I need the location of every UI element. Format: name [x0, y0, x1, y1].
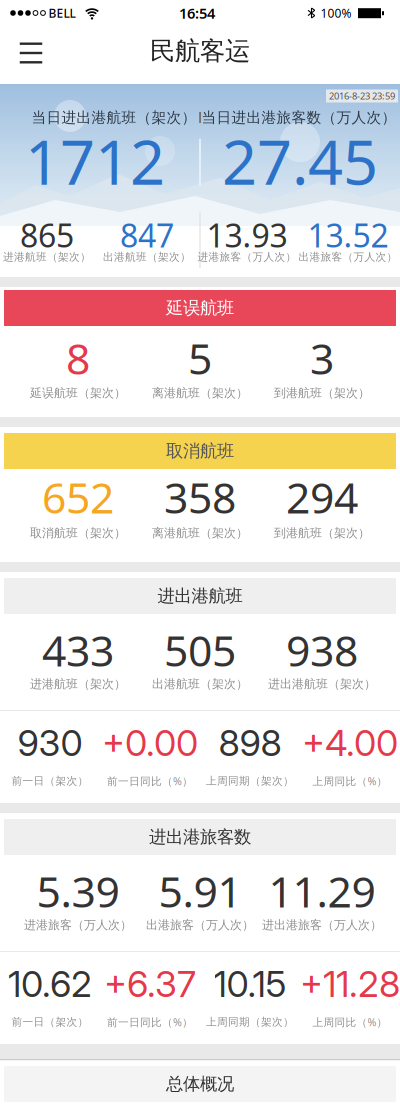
staticText: 出港旅客（万人次）: [146, 918, 254, 932]
staticText: 847: [120, 214, 174, 256]
staticText: 延误航班（架次）: [30, 386, 126, 400]
staticText: 505: [164, 622, 236, 678]
staticText: 652: [42, 469, 114, 525]
staticText: 出港旅客（万人次）: [298, 250, 397, 263]
staticText: 到港航班（架次）: [274, 526, 370, 540]
staticText: 进港旅客（万人次）: [24, 918, 132, 932]
staticText: 前一日同比（%）: [107, 1015, 193, 1029]
staticText: 出港航班（架次）: [152, 677, 248, 691]
staticText: 延误航班: [166, 297, 234, 319]
staticText: 当日进出港旅客数（万人次）: [201, 108, 396, 126]
staticText: 5.39: [36, 863, 119, 919]
staticText: 取消航班: [166, 440, 234, 462]
staticText: 13.52: [307, 214, 388, 256]
staticText: 16:54: [179, 3, 215, 23]
staticText: 10.15: [213, 962, 286, 1006]
staticText: 进出港旅客（万人次）: [262, 918, 382, 932]
staticText: 358: [164, 469, 236, 525]
staticText: 5: [188, 330, 212, 386]
staticText: 11.29: [268, 863, 375, 919]
button[interactable]: 进出港旅客数: [4, 819, 396, 855]
staticText: BELL: [48, 5, 75, 21]
staticText: 898: [218, 721, 281, 765]
staticText: 前一日同比（%）: [107, 774, 193, 788]
staticText: 433: [42, 622, 114, 678]
button[interactable]: Menu: [20, 42, 42, 63]
staticText: +0.00: [102, 721, 198, 765]
button[interactable]: 延误航班: [4, 290, 396, 326]
staticText: 取消航班（架次）: [30, 526, 126, 540]
staticText: 总体概况: [166, 1073, 234, 1095]
staticText: 进港航班（架次）: [30, 677, 126, 691]
staticText: 1712: [25, 120, 165, 202]
staticText: 8: [66, 330, 90, 386]
staticText: 上周同比（%）: [312, 774, 387, 788]
staticText: 100%: [320, 5, 351, 21]
staticText: 出港航班（架次）: [103, 250, 191, 263]
staticText: 进出港航班: [157, 585, 242, 607]
staticText: 5.91: [158, 863, 241, 919]
staticText: 13.93: [206, 214, 287, 256]
staticText: +6.37: [104, 962, 196, 1006]
staticText: 离港航班（架次）: [152, 526, 248, 540]
staticText: 3: [310, 330, 334, 386]
staticText: 进港航班（架次）: [3, 250, 91, 263]
button[interactable]: 取消航班: [4, 433, 396, 469]
staticText: 离港航班（架次）: [152, 386, 248, 400]
staticText: 进出港旅客数: [149, 826, 251, 848]
staticText: 当日进出港航班（架次）: [31, 108, 196, 126]
button[interactable]: 总体概况: [4, 1066, 396, 1102]
staticText: 865: [20, 214, 74, 256]
staticText: 294: [286, 469, 358, 525]
staticText: 进港旅客（万人次）: [197, 250, 296, 263]
staticText: 27.45: [222, 120, 378, 202]
staticText: 前一日（架次）: [11, 774, 88, 787]
button[interactable]: 进出港航班: [4, 578, 396, 614]
staticText: 进出港航班（架次）: [268, 677, 376, 691]
staticText: 民航客运: [150, 35, 250, 66]
staticText: 2016-8-23 23:59: [329, 90, 395, 102]
staticText: 上周同比（%）: [312, 1015, 387, 1029]
staticText: 前一日（架次）: [11, 1015, 88, 1028]
staticText: 930: [17, 721, 82, 765]
staticText: 938: [286, 622, 358, 678]
staticText: +4.00: [302, 721, 398, 765]
staticText: 到港航班（架次）: [274, 386, 370, 400]
staticText: 上周同期（架次）: [206, 1015, 294, 1028]
staticText: +11.28: [300, 962, 400, 1006]
staticText: 10.62: [8, 962, 92, 1006]
staticText: 上周同期（架次）: [206, 774, 294, 787]
